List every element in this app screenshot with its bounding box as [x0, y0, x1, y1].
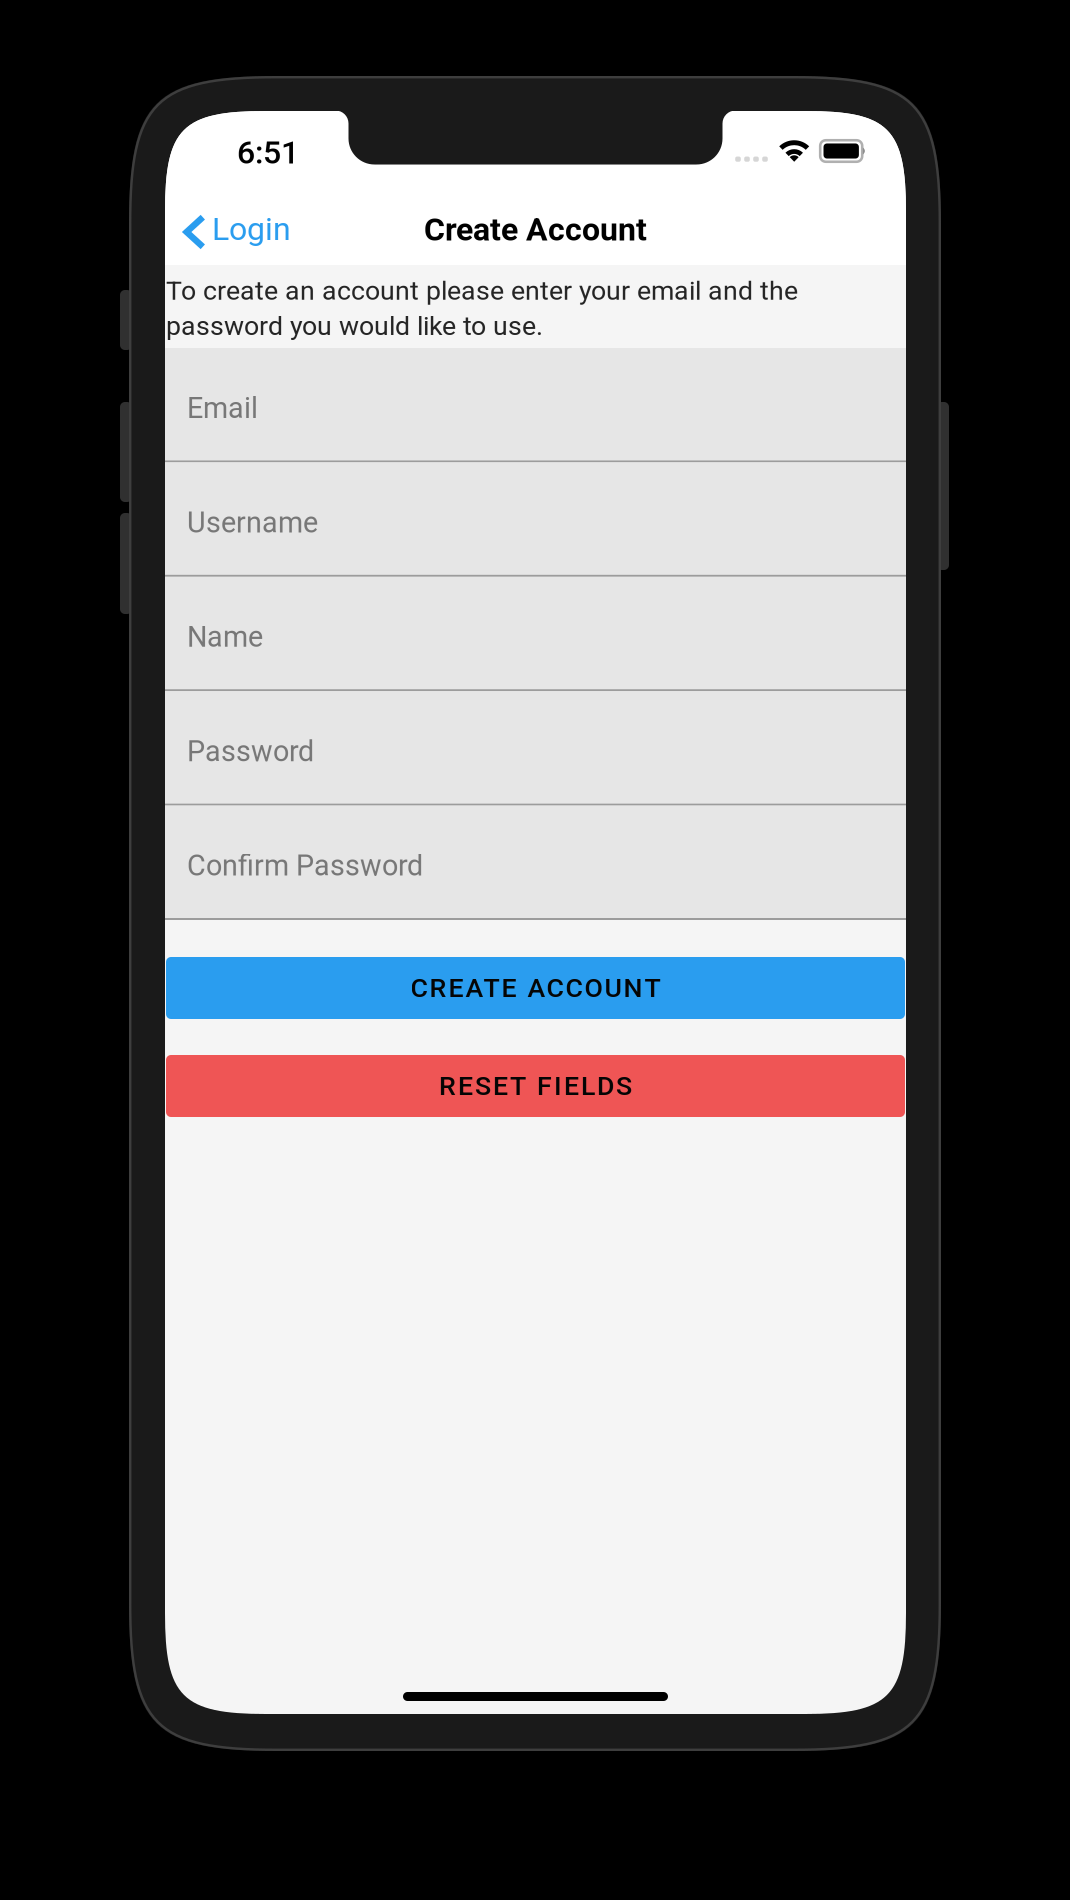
staticText: Email	[187, 391, 258, 425]
button[interactable]: Password	[165, 691, 906, 806]
button[interactable]: Name	[165, 577, 906, 691]
staticText: Password	[187, 735, 314, 768]
staticText: To create an account please enter your e…	[166, 275, 798, 341]
staticText: RESET FIELDS	[439, 1070, 632, 1102]
button[interactable]: Username	[165, 462, 906, 577]
button[interactable]: Email	[165, 348, 906, 462]
staticText: 6:51	[237, 134, 299, 171]
staticText: Login	[212, 210, 291, 248]
button[interactable]: Confirm Password	[165, 806, 906, 920]
staticText: CREATE ACCOUNT	[410, 972, 660, 1004]
staticText: Confirm Password	[187, 849, 423, 883]
staticText: Create Account	[424, 211, 647, 248]
staticText: Name	[187, 620, 263, 654]
staticText: Username	[187, 506, 318, 539]
button[interactable]: CREATE ACCOUNT	[166, 957, 905, 1019]
button[interactable]: Login	[165, 191, 303, 265]
button[interactable]: RESET FIELDS	[166, 1055, 905, 1117]
